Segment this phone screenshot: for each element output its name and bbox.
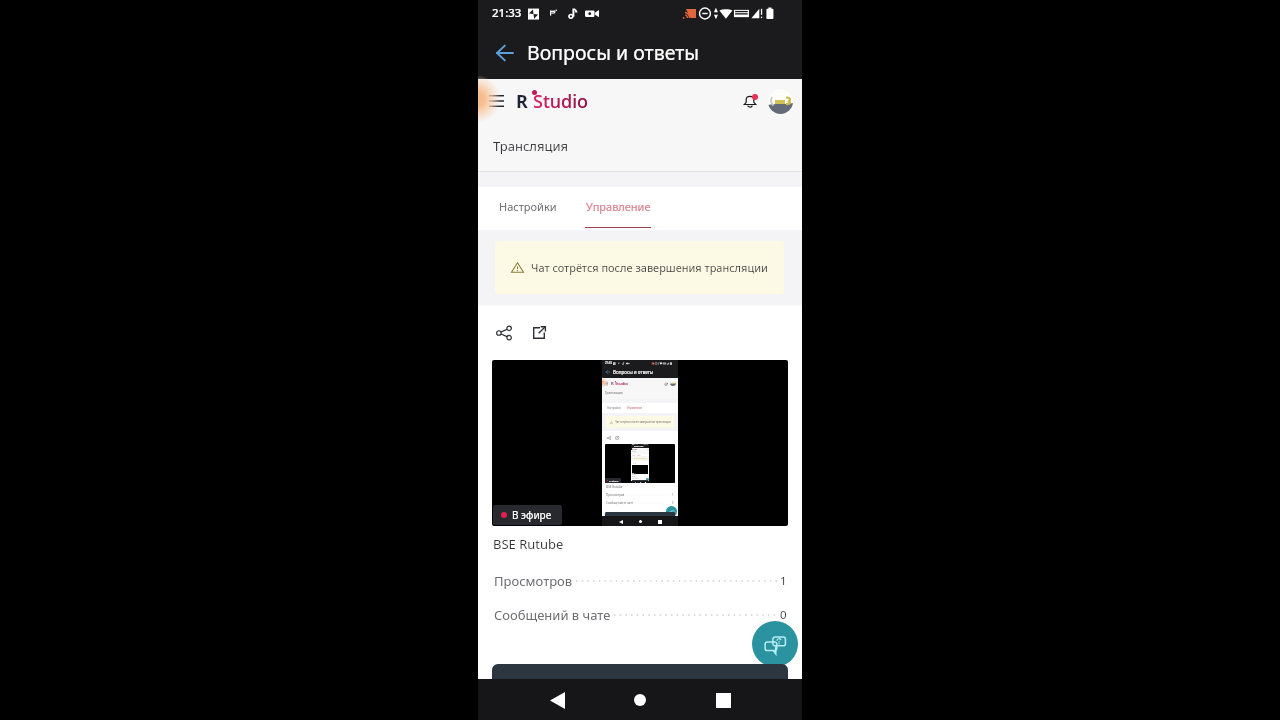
button[interactable]: Recents [655, 517, 664, 526]
staticText: 21:33 [605, 361, 612, 365]
staticText: Просмотров [494, 572, 573, 590]
staticText: В эфире [512, 508, 552, 522]
button[interactable]: Back [616, 517, 625, 526]
staticText: Настройки [499, 199, 557, 214]
button[interactable]: Home [621, 681, 659, 719]
button[interactable]: Home [636, 517, 645, 526]
staticText: Трансляция [605, 391, 623, 395]
staticText: Настройки [632, 455, 636, 456]
staticText: Управление [627, 406, 642, 410]
button[interactable]: Управление [627, 403, 642, 413]
button[interactable]: Questions and answers [752, 621, 798, 667]
staticText: Управление [586, 199, 651, 214]
button[interactable]: Questions and answers [646, 478, 649, 481]
button[interactable]: Menu [631, 448, 633, 450]
button[interactable]: Recents [704, 681, 742, 719]
button[interactable]: Profile [768, 89, 793, 114]
button[interactable]: Menu [602, 379, 610, 387]
staticText: 1 [780, 573, 787, 589]
button[interactable]: Управление [585, 187, 651, 230]
button[interactable]: Notifications [662, 380, 669, 387]
staticText: R [611, 380, 614, 386]
staticText: Трансляция [632, 451, 637, 452]
staticText: Управление [637, 455, 641, 456]
button[interactable]: Live video [605, 444, 675, 483]
staticText: В эфире [609, 479, 619, 482]
button[interactable]: Open externally [613, 434, 620, 441]
button[interactable]: Live video [632, 465, 648, 474]
staticText: BSE Rutube [493, 535, 564, 553]
staticText: 1 [672, 493, 674, 497]
button[interactable]: Share [605, 434, 612, 441]
button[interactable]: Profile [670, 380, 676, 386]
button[interactable]: Back [488, 36, 521, 69]
button[interactable]: Share [489, 318, 519, 348]
staticText: BSE Rutube [632, 474, 636, 475]
staticText: Просмотров [606, 493, 625, 497]
staticText: Чат сотрётся после завершения трансляции [615, 420, 671, 424]
button[interactable]: Настройки [605, 403, 622, 413]
staticText: Трансляция [493, 137, 569, 155]
staticText: Вопросы и ответы [634, 446, 644, 447]
button[interactable]: Notifications [646, 448, 648, 450]
button[interactable]: Recents [644, 481, 646, 483]
staticText: Настройки [607, 406, 621, 410]
button[interactable]: Настройки [632, 454, 636, 456]
button[interactable]: Open externally [634, 462, 636, 464]
staticText: Studio [533, 89, 589, 114]
button[interactable]: Управление [637, 454, 641, 456]
staticText: Чат сотрётся после завершения трансляции [531, 260, 768, 275]
staticText: Studio [634, 449, 638, 450]
staticText: Сообщений в чате [606, 501, 634, 505]
staticText: 0 [672, 501, 674, 505]
button[interactable]: Home [639, 481, 641, 483]
staticText: 21:33 [492, 5, 522, 21]
button[interactable]: Open externally [524, 318, 554, 348]
staticText: Сообщений в чате [632, 478, 639, 479]
button[interactable]: Notifications [736, 87, 764, 115]
staticText: Чат сотрётся после завершения трансляции [634, 458, 648, 459]
staticText: 0 [780, 607, 787, 623]
staticText: Просмотров [632, 476, 637, 477]
button[interactable]: Back [632, 446, 634, 448]
button[interactable]: Back [634, 481, 636, 483]
button[interactable]: Настройки [492, 187, 563, 230]
button[interactable]: Back [604, 368, 612, 376]
button[interactable]: Share [632, 462, 634, 464]
staticText: В эфире [632, 473, 635, 474]
staticText: Вопросы и ответы [613, 369, 654, 375]
button[interactable]: Menu [480, 85, 512, 117]
staticText: R [516, 89, 528, 114]
staticText: BSE Rutube [606, 485, 623, 489]
staticText: Сообщений в чате [494, 606, 611, 624]
button[interactable]: Questions and answers [666, 506, 677, 517]
staticText: Вопросы и ответы [527, 39, 700, 66]
staticText: Studio [615, 380, 628, 386]
button[interactable]: Back [538, 681, 576, 719]
button[interactable]: Live video [492, 360, 788, 526]
